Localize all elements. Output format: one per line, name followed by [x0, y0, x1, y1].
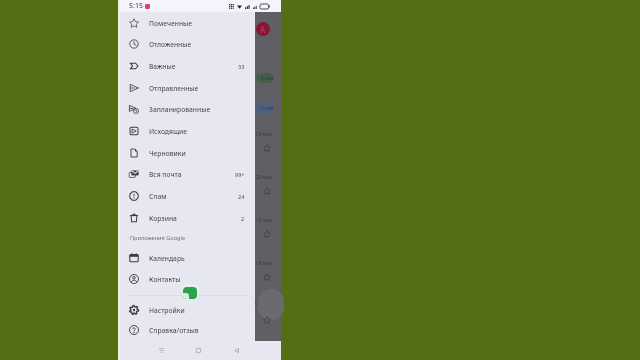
staticText: 8 ноя: [261, 75, 273, 81]
button[interactable]: Вся почта: [118, 163, 255, 185]
staticText: Справка/отзыв: [149, 326, 199, 335]
button[interactable]: Back: [229, 343, 244, 358]
staticText: Календарь: [149, 254, 185, 263]
staticText: Вся почта: [149, 170, 182, 179]
staticText: 19 мая: [256, 217, 272, 224]
button[interactable]: Черновики: [118, 142, 255, 164]
staticText: A: [260, 24, 266, 35]
button[interactable]: Календарь: [118, 247, 255, 269]
button[interactable]: Home: [191, 343, 206, 358]
button[interactable]: Справка/отзыв: [118, 319, 255, 341]
staticText: 33: [238, 63, 245, 70]
staticText: Контакты: [149, 275, 181, 284]
staticText: 20 мая: [256, 174, 272, 181]
staticText: Спам: [149, 192, 167, 201]
staticText: Исходящие: [149, 127, 188, 136]
staticText: Черновики: [149, 149, 186, 158]
button[interactable]: Настройки: [118, 299, 255, 321]
staticText: 18 мая: [256, 260, 272, 267]
staticText: Корзина: [149, 214, 177, 223]
staticText: Настройки: [149, 306, 185, 315]
button[interactable]: Отложенные: [118, 33, 255, 55]
button[interactable]: Отправленные: [118, 77, 255, 99]
button[interactable]: Важные: [118, 55, 255, 77]
staticText: 2: [241, 215, 245, 222]
staticText: Запланированные: [149, 105, 211, 114]
button[interactable]: Запланированные: [118, 98, 255, 120]
staticText: 20 мая: [256, 131, 272, 138]
staticText: Отложенные: [149, 40, 192, 49]
staticText: Помеченные: [149, 19, 193, 28]
staticText: ь: [255, 300, 258, 307]
button[interactable]: Корзина: [118, 207, 255, 229]
button[interactable]: Спам: [118, 185, 255, 207]
staticText: 5:15: [129, 1, 143, 11]
staticText: Отправленные: [149, 84, 199, 93]
staticText: 99+: [235, 171, 245, 178]
staticText: Приложения Google: [130, 234, 186, 242]
staticText: Важные: [149, 62, 176, 71]
button[interactable]: Помеченные: [118, 12, 255, 34]
staticText: 7 ноя: [261, 105, 273, 111]
button[interactable]: Контакты: [118, 268, 255, 290]
staticText: 24: [238, 193, 245, 200]
button[interactable]: Recent apps: [154, 343, 169, 358]
button[interactable]: Исходящие: [118, 120, 255, 142]
